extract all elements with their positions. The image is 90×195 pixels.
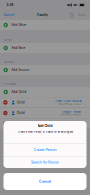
staticText: SOURCES — [4, 61, 14, 63]
staticText: Add Other — [11, 23, 26, 27]
button[interactable]: Save — [75, 10, 90, 20]
staticText: Child — [17, 101, 25, 104]
staticText: Albert Victor Christian — [55, 100, 81, 103]
staticText: Child — [17, 111, 25, 115]
staticText: Add Note — [11, 46, 25, 50]
button[interactable]: Cancel — [3, 173, 86, 190]
staticText: Cancel — [3, 13, 14, 17]
button[interactable]: Delete — [68, 10, 75, 20]
button[interactable]: Add Source — [0, 65, 90, 75]
button[interactable]: Child — [0, 97, 90, 108]
staticText: NOTES — [4, 39, 11, 41]
staticText: Add Child — [11, 90, 26, 94]
button[interactable]: Add Child — [0, 87, 90, 97]
button[interactable]: Cancel — [0, 10, 17, 20]
staticText: George V. Windsor — [62, 110, 81, 113]
staticText: 3:39 — [6, 3, 13, 7]
staticText: Add Child — [37, 124, 52, 128]
staticText: Add Source — [11, 68, 29, 72]
staticText: Create a New Person, or Search for an ex… — [17, 130, 72, 133]
staticText: Save — [78, 13, 86, 17]
staticText: Cancel — [39, 179, 51, 184]
staticText: b. 8 Jan 1864 Frogmore House — [58, 103, 81, 105]
button[interactable]: Search for Person — [3, 156, 86, 168]
staticText: Search for Person — [31, 160, 59, 164]
button[interactable]: Add Note — [0, 43, 90, 53]
button[interactable]: Add Other — [0, 20, 90, 30]
button[interactable]: Child — [0, 118, 90, 129]
staticText: CHILDREN — [4, 83, 16, 85]
button[interactable]: Child — [0, 108, 90, 118]
staticText: b. 3 Jun 1865 London, England — [60, 114, 81, 116]
staticText: Create Person — [33, 148, 56, 152]
staticText: Family — [37, 13, 48, 17]
button[interactable]: Create Person — [3, 143, 86, 156]
